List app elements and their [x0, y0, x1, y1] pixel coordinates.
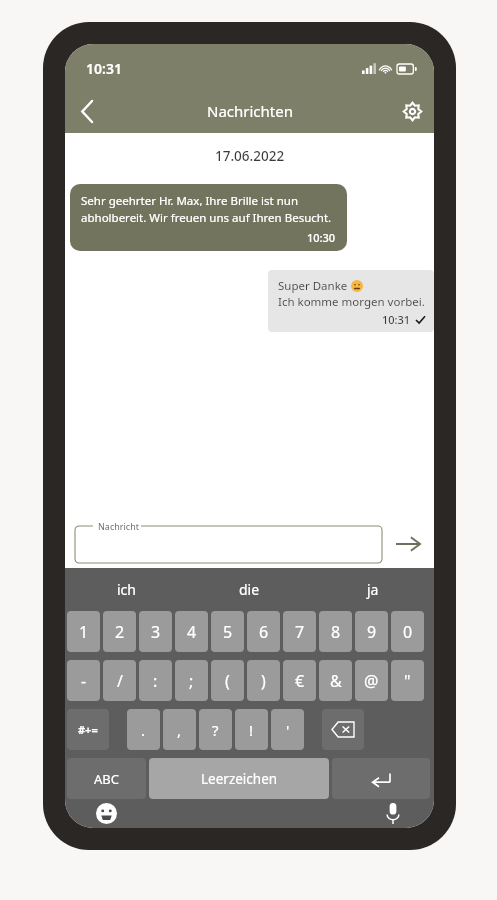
button[interactable]: Sehr geehrter Hr. Max, Ihre Brille ist n… — [70, 184, 347, 251]
staticText: ABC — [94, 770, 119, 788]
staticText: ) — [261, 670, 266, 692]
button[interactable]: 8 — [319, 611, 352, 652]
staticText: , — [177, 720, 182, 740]
staticText: @ — [364, 670, 379, 692]
button[interactable]: 2 — [103, 611, 136, 652]
button[interactable]: ; — [175, 660, 208, 701]
staticText: € — [295, 670, 305, 692]
button[interactable]: Emoji — [91, 799, 121, 828]
button[interactable]: 9 — [355, 611, 388, 652]
staticText: - — [81, 670, 87, 692]
button[interactable]: ) — [247, 660, 280, 701]
button[interactable]: 0 — [391, 611, 424, 652]
button[interactable]: ich — [65, 568, 188, 611]
staticText: #+= — [78, 722, 98, 737]
button[interactable]: . — [127, 709, 160, 750]
staticText: ja — [367, 580, 379, 599]
staticText: 3 — [151, 621, 161, 643]
staticText: 17.06.2022 — [215, 147, 285, 165]
button[interactable]: Leerzeichen — [149, 758, 329, 799]
staticText: & — [330, 670, 342, 692]
staticText: Leerzeichen — [201, 770, 278, 788]
button[interactable]: : — [139, 660, 172, 701]
button[interactable]: die — [188, 568, 311, 611]
staticText: Nachrichten — [207, 101, 293, 121]
button[interactable]: & — [319, 660, 352, 701]
button[interactable]: " — [391, 660, 424, 701]
button[interactable]: Settings — [390, 89, 434, 133]
staticText: 10:31 — [86, 59, 122, 78]
staticText: 6 — [259, 621, 269, 643]
staticText: 4 — [187, 621, 197, 643]
staticText: / — [117, 670, 123, 692]
button[interactable]: - — [67, 660, 100, 701]
staticText: ? — [212, 720, 219, 740]
staticText: ! — [249, 720, 254, 740]
staticText: 10:30 — [307, 230, 336, 245]
button[interactable]: ( — [211, 660, 244, 701]
button[interactable]: ' — [271, 709, 304, 750]
staticText: ; — [189, 670, 194, 692]
button[interactable]: , — [163, 709, 196, 750]
button[interactable]: ja — [311, 568, 434, 611]
staticText: 9 — [367, 621, 377, 643]
staticText: Ich komme morgen vorbei. — [278, 294, 425, 310]
button[interactable]: 6 — [247, 611, 280, 652]
staticText: 10:31 — [382, 312, 411, 327]
button[interactable]: 1 — [67, 611, 100, 652]
staticText: . — [141, 720, 146, 740]
staticText: 8 — [331, 621, 341, 643]
staticText: ( — [225, 670, 230, 692]
button[interactable]: #+= — [67, 709, 109, 750]
button[interactable]: ? — [199, 709, 232, 750]
button[interactable]: Enter — [332, 758, 430, 799]
staticText: 5 — [223, 621, 233, 643]
staticText: : — [153, 670, 158, 692]
button[interactable]: Voice input — [378, 799, 408, 828]
button[interactable]: Super Danke — [268, 270, 434, 332]
button[interactable]: @ — [355, 660, 388, 701]
button[interactable]: Backspace — [322, 709, 364, 750]
button[interactable]: Back — [65, 89, 109, 133]
button[interactable]: 3 — [139, 611, 172, 652]
staticText: ich — [117, 580, 136, 599]
button[interactable]: / — [103, 660, 136, 701]
staticText: 2 — [115, 621, 125, 643]
button[interactable]: 7 — [283, 611, 316, 652]
staticText: 1 — [79, 621, 89, 643]
staticText: " — [404, 670, 411, 692]
button[interactable]: ABC — [67, 758, 146, 799]
staticText: 0 — [403, 621, 413, 643]
staticText: Nachricht — [98, 520, 139, 532]
button[interactable]: ! — [235, 709, 268, 750]
button[interactable]: Send — [390, 526, 426, 562]
staticText: Super Danke — [278, 278, 351, 294]
staticText: die — [239, 580, 260, 599]
staticText: 7 — [295, 621, 305, 643]
button[interactable]: 5 — [211, 611, 244, 652]
button[interactable]: 4 — [175, 611, 208, 652]
staticText: Sehr geehrter Hr. Max, Ihre Brille ist n… — [81, 193, 336, 226]
staticText: ' — [286, 720, 290, 740]
button[interactable]: € — [283, 660, 316, 701]
